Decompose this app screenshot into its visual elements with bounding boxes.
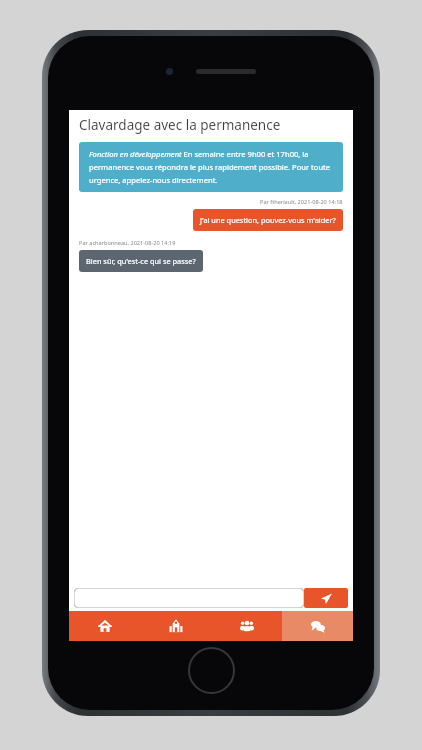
button[interactable]: Bien sûr, qu'est-ce qui se passe? — [79, 250, 203, 272]
button[interactable]: Communauté — [211, 611, 282, 641]
button[interactable]: Services — [140, 611, 211, 641]
button[interactable]: Envoyer — [304, 588, 348, 608]
button[interactable]: Message — [74, 588, 304, 608]
staticText: Fonction en développement En semaine ent… — [89, 149, 333, 185]
button[interactable]: Clavardage — [282, 611, 353, 641]
staticText: Par acharbonneau, 2021-08-20 14:19 — [79, 239, 176, 247]
staticText: J'ai une question, pouvez-vous m'aider? — [200, 215, 336, 225]
staticText: Bien sûr, qu'est-ce qui se passe? — [86, 256, 196, 266]
staticText: Par ftheriault, 2021-08-20 14:18 — [260, 198, 343, 206]
staticText: Clavardage avec la permanence — [79, 116, 281, 134]
button[interactable]: Accueil — [69, 611, 140, 641]
button[interactable]: J'ai une question, pouvez-vous m'aider? — [193, 209, 343, 231]
